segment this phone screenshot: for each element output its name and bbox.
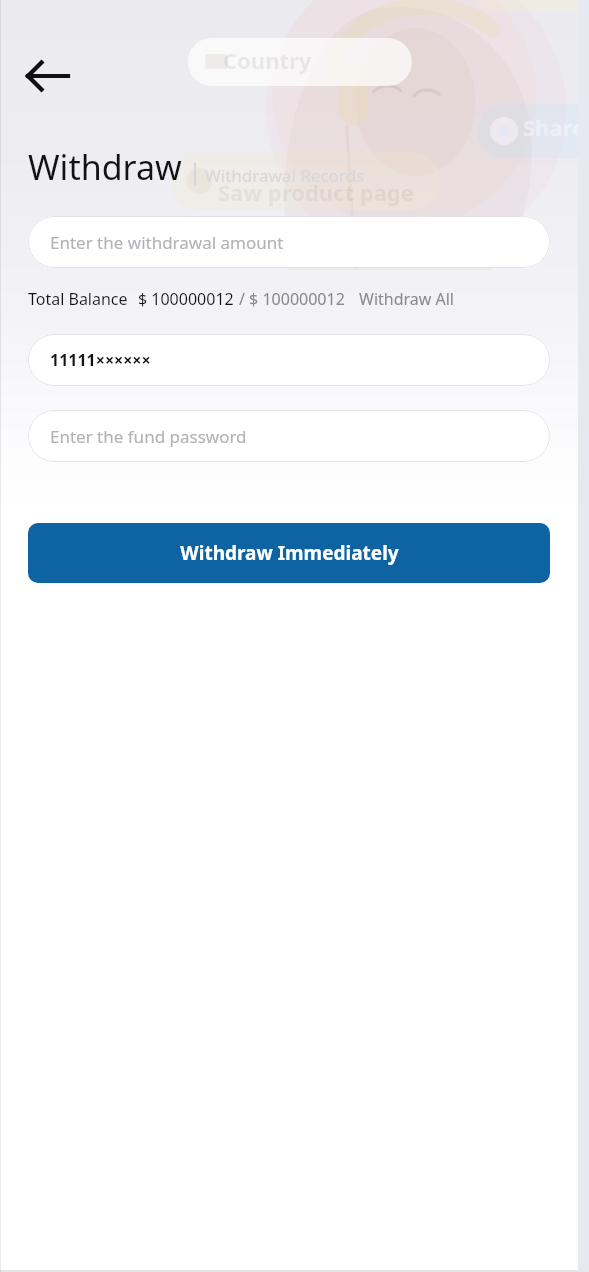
staticText: Withdrawal Records — [205, 164, 365, 187]
staticText: Withdraw — [28, 144, 182, 190]
button[interactable]: Enter the fund password — [28, 410, 550, 462]
staticText: Enter the withdrawal amount — [50, 231, 284, 254]
staticText: Language — [250, 239, 359, 269]
staticText: Total Balance — [28, 288, 128, 310]
staticText: Withdraw Immediately — [180, 540, 399, 566]
button[interactable]: Back — [18, 52, 76, 100]
staticText: Country — [223, 45, 312, 75]
button[interactable]: Withdrawal Records — [205, 164, 365, 187]
staticText: $ 100000012 — [138, 288, 234, 310]
button[interactable]: 11111×××××× — [28, 334, 550, 386]
staticText: Enter the fund password — [50, 425, 247, 448]
button[interactable]: Withdraw All — [359, 288, 454, 310]
staticText: / $ 100000012 — [239, 288, 345, 310]
staticText: Share — [523, 112, 586, 142]
staticText: Withdraw All — [359, 288, 454, 310]
staticText: 11111×××××× — [50, 349, 151, 371]
staticText: Saw product page — [218, 177, 414, 207]
button[interactable]: Withdraw Immediately — [28, 523, 550, 583]
button[interactable]: Enter the withdrawal amount — [28, 216, 550, 268]
